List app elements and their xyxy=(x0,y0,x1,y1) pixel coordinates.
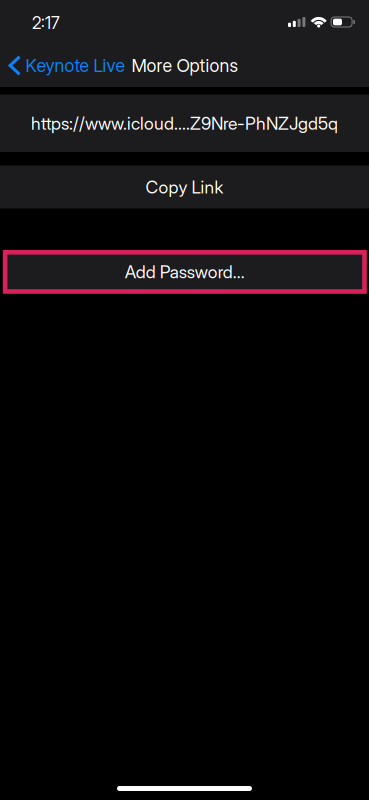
button[interactable]: Back to Keynote Live xyxy=(0,44,133,87)
button[interactable]: Copy Link xyxy=(0,165,369,209)
staticText: Add Password... xyxy=(125,261,245,282)
button[interactable]: Add Password... xyxy=(0,250,369,294)
staticText: 2:17 xyxy=(32,13,60,33)
staticText: Keynote Live xyxy=(25,55,125,76)
staticText: Copy Link xyxy=(145,176,223,198)
staticText: More Options xyxy=(131,55,237,76)
staticText: https://www.icloud....Z9Nre-PhNZJgd5q xyxy=(31,113,338,134)
